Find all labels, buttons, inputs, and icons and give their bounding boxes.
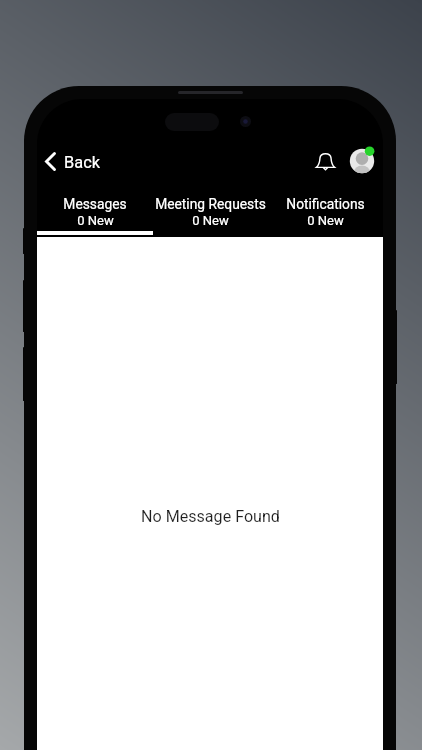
button[interactable]: Notifications (310, 146, 340, 176)
button[interactable]: Messages (37, 195, 153, 235)
staticText: 0 New (77, 213, 114, 228)
button[interactable]: Profile (348, 147, 376, 175)
staticText: Back (64, 153, 101, 172)
staticText: Notifications (286, 196, 365, 212)
button[interactable]: Meeting Requests (153, 195, 268, 235)
staticText: Messages (63, 196, 127, 212)
button[interactable]: Notifications (268, 195, 383, 235)
staticText: 0 New (307, 213, 344, 228)
button[interactable]: Back (40, 147, 106, 176)
staticText: Meeting Requests (155, 196, 266, 212)
staticText: 0 New (192, 213, 229, 228)
staticText: No Message Found (141, 507, 280, 526)
